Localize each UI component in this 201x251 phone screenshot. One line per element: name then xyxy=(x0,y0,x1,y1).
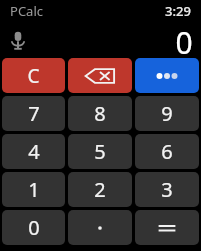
button[interactable]: 1 xyxy=(2,172,65,207)
button[interactable]: 6 xyxy=(135,134,199,169)
staticText: 1 xyxy=(28,176,40,203)
button[interactable]: Voice input xyxy=(5,27,31,53)
button[interactable]: Equals xyxy=(135,210,199,245)
staticText: 4 xyxy=(28,138,40,165)
button[interactable]: 4 xyxy=(2,134,65,169)
button[interactable]: 5 xyxy=(68,134,132,169)
staticText: C xyxy=(27,63,40,89)
button[interactable]: 3 xyxy=(135,172,199,207)
staticText: 7 xyxy=(28,100,40,127)
staticText: PCalc xyxy=(10,2,43,20)
button[interactable]: Clear xyxy=(2,58,65,93)
button[interactable]: 9 xyxy=(135,96,199,131)
staticText: 3:29 xyxy=(165,2,191,20)
button[interactable]: 2 xyxy=(68,172,132,207)
button[interactable]: 0 xyxy=(2,210,65,245)
staticText: 0 xyxy=(175,22,193,58)
button[interactable]: Decimal point xyxy=(68,210,132,245)
staticText: 5 xyxy=(94,138,106,165)
staticText: 6 xyxy=(161,138,173,165)
button[interactable]: 8 xyxy=(68,96,132,131)
staticText: 3 xyxy=(161,176,173,203)
button[interactable]: PCalc xyxy=(10,2,43,20)
button[interactable]: More options xyxy=(135,58,199,93)
staticText: 8 xyxy=(94,100,106,127)
staticText: 9 xyxy=(161,100,173,127)
button[interactable]: Backspace xyxy=(68,58,132,93)
button[interactable]: 7 xyxy=(2,96,65,131)
staticText: 0 xyxy=(28,214,40,241)
staticText: 2 xyxy=(94,176,106,203)
